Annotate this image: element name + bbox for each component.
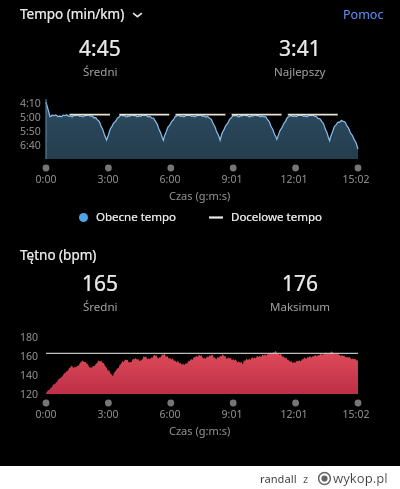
staticText: 3:41 xyxy=(279,34,321,63)
staticText: 176 xyxy=(282,269,319,298)
button[interactable]: Pomoc xyxy=(343,6,384,23)
staticText: 12:01 xyxy=(274,407,314,421)
staticText: 165 xyxy=(82,269,119,298)
staticText: 120 xyxy=(20,387,39,401)
staticText: 4:10 xyxy=(20,96,41,110)
staticText: Obecne tempo xyxy=(96,209,177,225)
staticText: Maksimum xyxy=(270,299,331,315)
staticText: 140 xyxy=(20,368,39,382)
staticText: 6:00 xyxy=(150,407,190,421)
staticText: Najlepszy xyxy=(274,64,326,80)
staticText: 9:01 xyxy=(212,407,252,421)
staticText: 160 xyxy=(20,349,39,363)
staticText: Średni xyxy=(83,299,118,315)
staticText: Czas (g:m:s) xyxy=(169,188,231,203)
staticText: randall xyxy=(260,471,297,486)
staticText: 15:02 xyxy=(336,172,376,186)
staticText: 12:01 xyxy=(274,172,314,186)
staticText: wykop.pl xyxy=(333,469,388,487)
staticText: Średni xyxy=(83,64,118,80)
staticText: 3:00 xyxy=(88,172,128,186)
staticText: 5:50 xyxy=(20,124,41,138)
staticText: 0:00 xyxy=(26,407,66,421)
staticText: z xyxy=(303,471,309,486)
other: Zmień metrykę xyxy=(132,9,143,20)
staticText: 9:01 xyxy=(212,172,252,186)
staticText: Pomoc xyxy=(343,6,384,23)
staticText: Docelowe tempo xyxy=(231,209,322,225)
staticText: Czas (g:m:s) xyxy=(169,423,231,438)
staticText: 6:00 xyxy=(150,172,190,186)
button[interactable]: Tempo (min/km) xyxy=(20,5,143,23)
staticText: 15:02 xyxy=(336,407,376,421)
staticText: Tętno (bpm) xyxy=(20,246,97,264)
staticText: 4:45 xyxy=(79,34,121,63)
staticText: 3:00 xyxy=(88,407,128,421)
staticText: 5:00 xyxy=(20,110,41,124)
staticText: 180 xyxy=(20,330,39,344)
staticText: 0:00 xyxy=(26,172,66,186)
staticText: 6:40 xyxy=(20,138,41,152)
staticText: Tempo (min/km) xyxy=(20,5,125,23)
